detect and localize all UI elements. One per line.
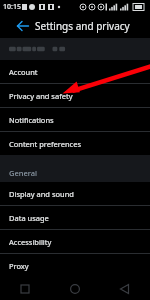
button[interactable]: Recents bbox=[0, 278, 50, 300]
staticText: 10:15 bbox=[3, 2, 21, 12]
button[interactable]: Back bbox=[14, 17, 32, 35]
staticText: Content preferences bbox=[9, 139, 81, 149]
staticText: Data usage bbox=[9, 213, 49, 223]
button[interactable]: Home bbox=[50, 278, 100, 300]
staticText: Settings and privacy bbox=[35, 19, 130, 33]
button[interactable]: Account bbox=[0, 60, 150, 83]
staticText: Notifications bbox=[9, 115, 54, 125]
button[interactable]: Back bbox=[100, 278, 150, 300]
button[interactable]: Data usage bbox=[0, 206, 150, 229]
button[interactable] bbox=[0, 38, 150, 60]
staticText: Privacy and safety bbox=[9, 91, 73, 101]
staticText: Account bbox=[9, 67, 38, 77]
staticText: Accessibility bbox=[9, 237, 52, 247]
button[interactable]: Privacy and safety bbox=[0, 84, 150, 107]
button[interactable]: Content preferences bbox=[0, 132, 150, 155]
button[interactable]: Proxy bbox=[0, 254, 150, 277]
staticText: Display and sound bbox=[9, 189, 74, 199]
button[interactable]: Notifications bbox=[0, 108, 150, 131]
staticText: General bbox=[9, 168, 38, 178]
button[interactable]: Display and sound bbox=[0, 182, 150, 205]
staticText: Proxy bbox=[9, 261, 29, 271]
button[interactable]: Accessibility bbox=[0, 230, 150, 253]
